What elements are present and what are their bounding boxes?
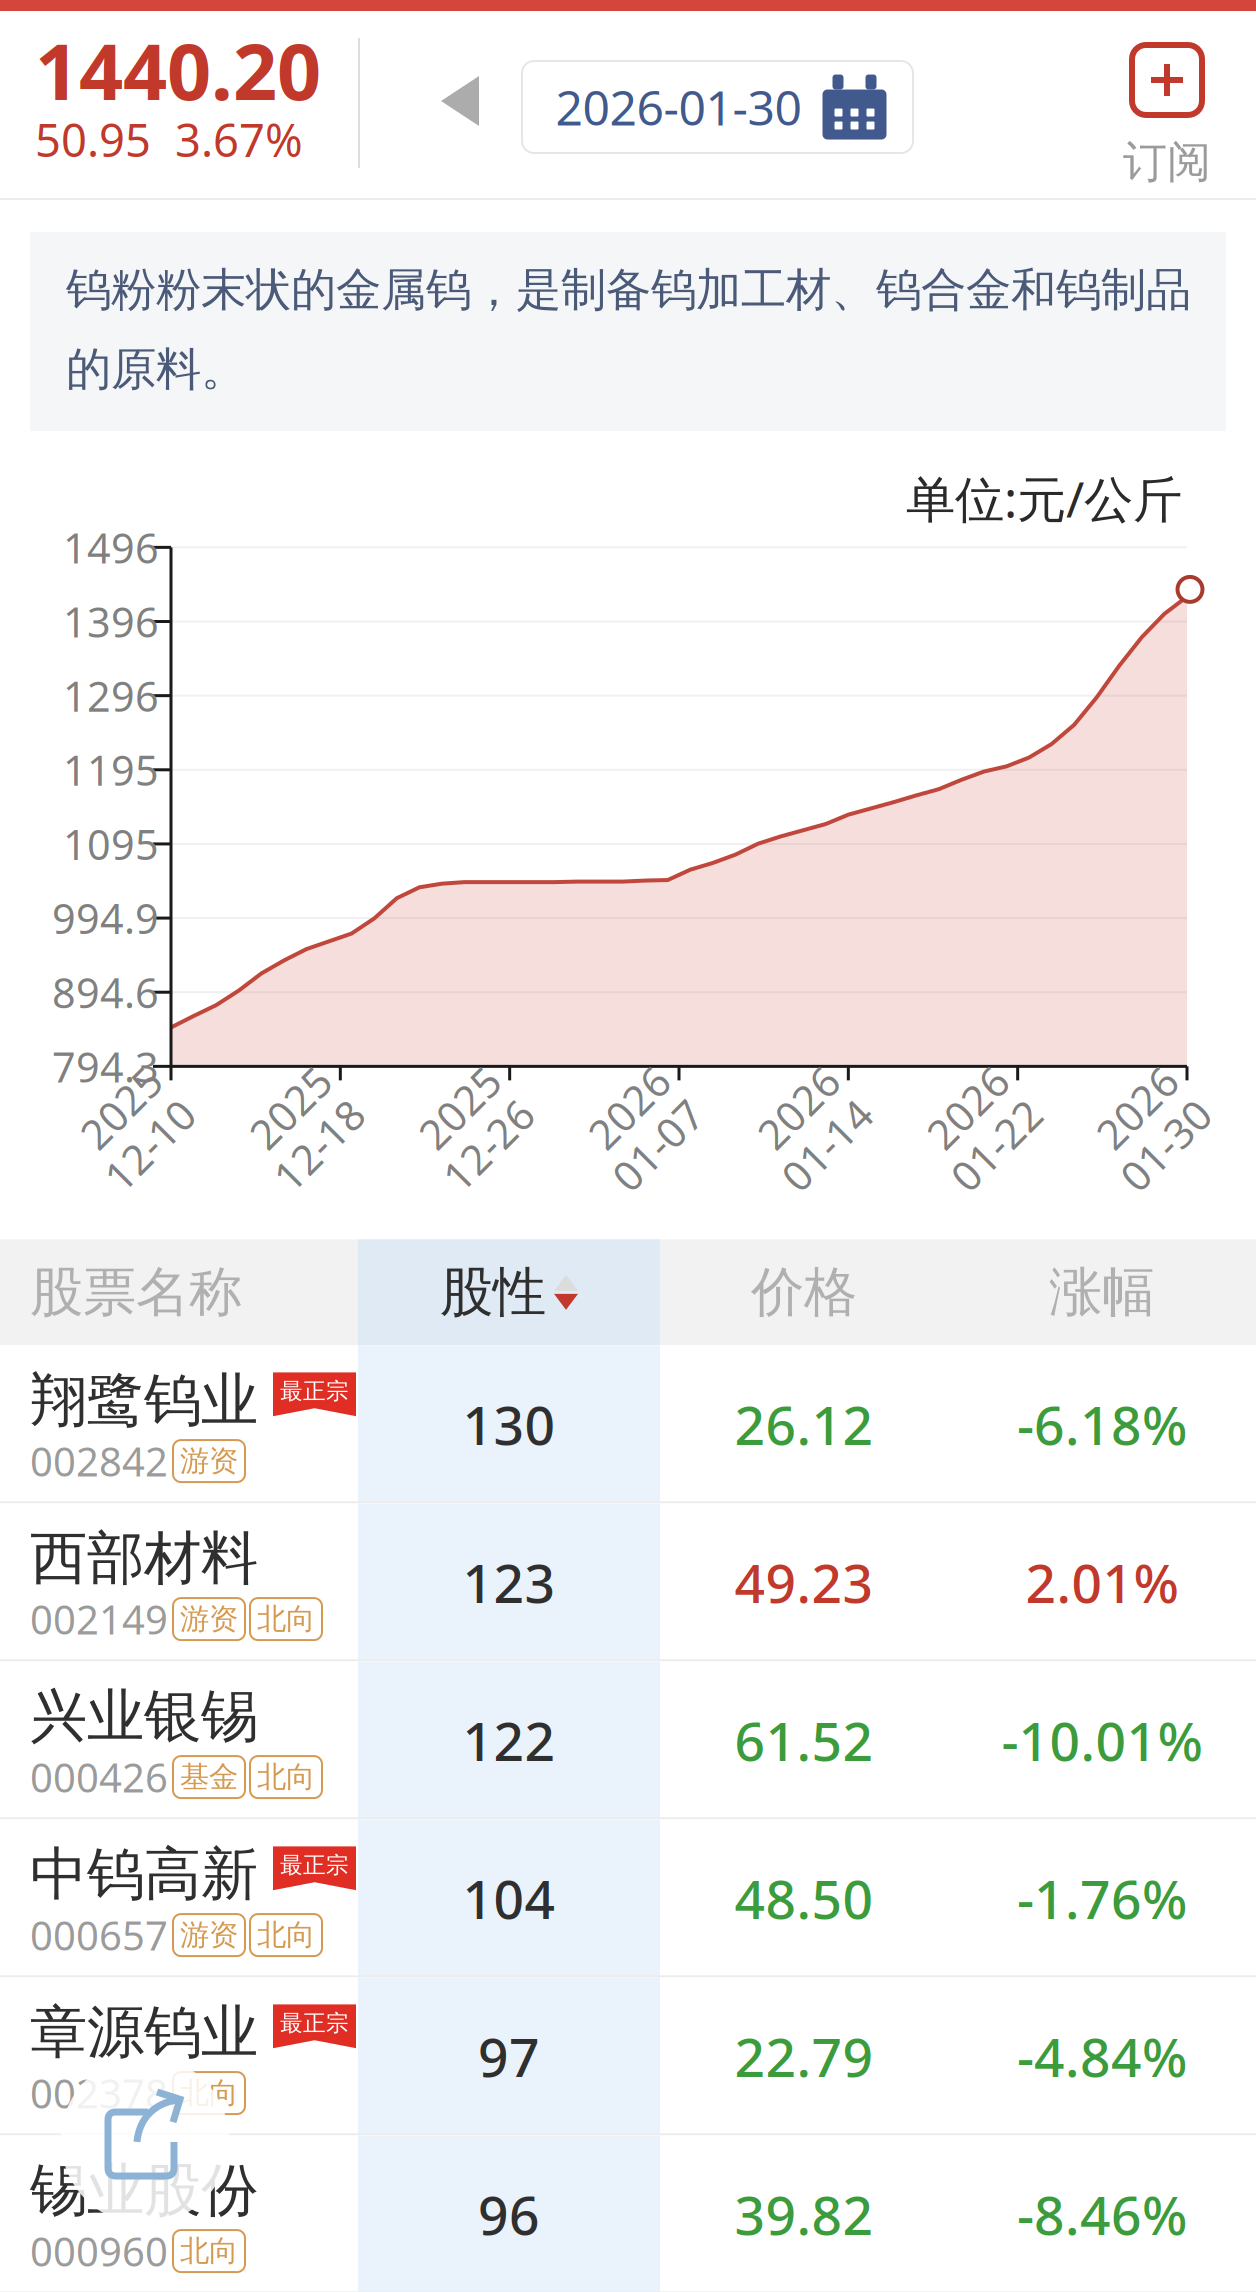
staticText: 123 [462, 1547, 555, 1618]
staticText: 96 [478, 2179, 540, 2250]
staticText: -6.18% [1017, 1389, 1187, 1460]
staticText: 2026 [769, 1077, 865, 1132]
staticText: 游资 [180, 1917, 238, 1953]
staticText: 北向 [257, 1917, 315, 1953]
button[interactable]: 西部材料 [0, 1503, 1256, 1661]
button[interactable]: 订阅 [1083, 45, 1251, 189]
button[interactable]: 2026-01-30 [522, 61, 913, 153]
staticText: 翔鹭钨业 [30, 1365, 258, 1435]
staticText: 794.3 [52, 1039, 159, 1094]
button[interactable]: Share [61, 2056, 229, 2224]
staticText: -8.46% [1017, 2179, 1187, 2250]
staticText: 01-14 [756, 1124, 865, 1179]
button[interactable]: Previous day [441, 76, 479, 126]
staticText: 兴业银锡 [30, 1681, 258, 1751]
staticText: 股票名称 [30, 1260, 242, 1325]
staticText: 1496 [63, 520, 159, 575]
staticText: 北向 [257, 1759, 315, 1795]
staticText: 97 [478, 2021, 540, 2092]
staticText: 22.79 [734, 2021, 873, 2092]
staticText: 2026 [1107, 1077, 1203, 1132]
staticText: 1440.20 [35, 19, 321, 121]
staticText: 最正宗 [280, 1851, 349, 1879]
staticText: 游资 [180, 1443, 238, 1479]
staticText: 订阅 [1123, 135, 1211, 189]
staticText: 26.12 [734, 1389, 873, 1460]
staticText: 1396 [63, 594, 159, 649]
button[interactable]: 中钨高新 [0, 1819, 1256, 1977]
staticText: 北向 [180, 2233, 238, 2269]
staticText: 50.95 3.67% [35, 109, 303, 169]
staticText: 002149 [30, 1592, 168, 1646]
staticText: 2025 [430, 1077, 526, 1132]
staticText: -1.76% [1017, 1863, 1187, 1934]
button[interactable]: 锡业股份 [0, 2135, 1256, 2292]
staticText: 1195 [63, 742, 159, 797]
staticText: 12-26 [417, 1124, 526, 1179]
button[interactable]: 章源钨业 [0, 1977, 1256, 2135]
staticText: 994.9 [52, 891, 159, 945]
staticText: 1095 [63, 816, 159, 871]
staticText: 104 [462, 1863, 555, 1934]
staticText: 1296 [63, 668, 159, 723]
staticText: 价格 [751, 1260, 857, 1325]
staticText: 2025 [261, 1077, 357, 1132]
staticText: 61.52 [734, 1705, 873, 1776]
staticText: 002378 [30, 2066, 168, 2120]
staticText: 49.23 [734, 1547, 873, 1618]
staticText: 894.6 [52, 965, 159, 1020]
staticText: 12-18 [248, 1124, 357, 1179]
staticText: 2.01% [1025, 1547, 1178, 1618]
staticText: 000657 [30, 1908, 168, 1962]
staticText: 002842 [30, 1434, 168, 1488]
staticText: 000960 [30, 2224, 168, 2278]
staticText: 股性 [440, 1260, 546, 1325]
staticText: 01-22 [925, 1124, 1034, 1179]
staticText: 39.82 [734, 2179, 873, 2250]
button[interactable]: 翔鹭钨业 [0, 1345, 1256, 1503]
staticText: 北向 [257, 1601, 315, 1637]
staticText: 西部材料 [30, 1523, 258, 1593]
staticText: 基金 [180, 1759, 238, 1795]
staticText: -4.84% [1017, 2021, 1187, 2092]
staticText: 游资 [180, 1601, 238, 1637]
button[interactable]: 股性 [358, 1239, 660, 1345]
staticText: 01-30 [1094, 1124, 1203, 1179]
staticText: 中钨高新 [30, 1839, 258, 1909]
staticText: 122 [462, 1705, 555, 1776]
staticText: 12-10 [78, 1124, 187, 1179]
button[interactable]: 兴业银锡 [0, 1661, 1256, 1819]
staticText: 000426 [30, 1750, 168, 1804]
staticText: 2026 [599, 1077, 695, 1132]
staticText: 2026-01-30 [555, 75, 801, 139]
staticText: -10.01% [1001, 1705, 1202, 1776]
staticText: 48.50 [734, 1863, 873, 1934]
staticText: 2025 [91, 1077, 187, 1132]
staticText: 130 [462, 1389, 555, 1460]
staticText: 最正宗 [280, 2009, 349, 2037]
staticText: 2026 [938, 1077, 1034, 1132]
staticText: 锡业股份 [30, 2155, 258, 2225]
staticText: 最正宗 [280, 1377, 349, 1405]
staticText: 北向 [180, 2075, 238, 2111]
staticText: 单位:元/公斤 [906, 466, 1182, 531]
staticText: 01-07 [586, 1124, 695, 1179]
staticText: 钨粉粉末状的金属钨，是制备钨加工材、钨合金和钨制品的原料。 [66, 262, 1191, 397]
staticText: 涨幅 [1049, 1260, 1155, 1325]
staticText: 章源钨业 [30, 1997, 258, 2067]
